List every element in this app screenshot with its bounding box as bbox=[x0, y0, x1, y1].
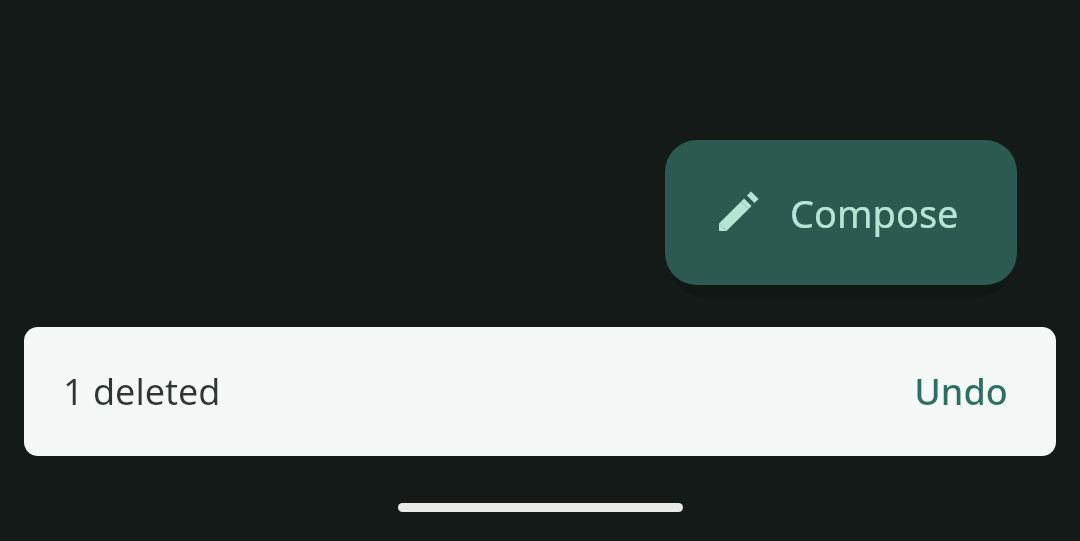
button[interactable]: Compose bbox=[665, 140, 1017, 285]
button[interactable]: Undo bbox=[898, 355, 1024, 428]
staticText: 1 deleted bbox=[63, 367, 221, 416]
staticText: Undo bbox=[914, 367, 1008, 416]
other: Compose bbox=[713, 189, 761, 237]
staticText: Compose bbox=[790, 187, 959, 239]
